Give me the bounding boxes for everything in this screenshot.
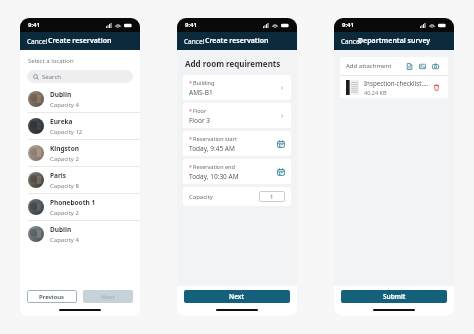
staticText: * — [189, 135, 193, 142]
button[interactable]: Inspection-checklist.pdf — [340, 76, 448, 98]
staticText: Capacity 12 — [50, 128, 83, 136]
staticText: Inspection-checklist.pdf — [364, 79, 431, 87]
staticText: Building — [193, 79, 215, 86]
button[interactable]: Eureka — [20, 113, 140, 139]
button[interactable]: Next — [184, 290, 290, 303]
other: Pick date — [277, 140, 285, 148]
staticText: Search — [42, 73, 61, 81]
button[interactable]: Cancel — [177, 34, 212, 49]
staticText: AMS-B1 — [189, 88, 213, 97]
staticText: Capacity 8 — [50, 182, 79, 190]
staticText: Today, 10:30 AM — [189, 172, 239, 181]
staticText: Eureka — [50, 117, 73, 126]
staticText: Capacity 4 — [50, 236, 79, 244]
staticText: Reservation start — [193, 135, 237, 142]
button[interactable]: Capacity — [183, 187, 291, 206]
staticText: Reservation end — [193, 163, 235, 170]
button[interactable]: Kingston — [20, 140, 140, 166]
staticText: Add attachment — [346, 62, 403, 70]
staticText: Cancel — [341, 37, 362, 46]
staticText: Create reservation — [205, 36, 269, 46]
staticText: Capacity 2 — [50, 209, 79, 217]
button[interactable]: * — [183, 75, 291, 100]
button[interactable]: Take photo — [429, 60, 442, 73]
button[interactable]: Attach image — [416, 60, 429, 73]
staticText: Next — [101, 293, 115, 301]
staticText: Create reservation — [48, 36, 112, 46]
staticText: Select a location — [28, 57, 74, 65]
staticText: * — [189, 163, 193, 170]
button[interactable]: Dublin — [20, 221, 140, 247]
button[interactable]: Submit — [341, 290, 447, 303]
staticText: Capacity — [189, 193, 259, 201]
staticText: Kingston — [50, 144, 79, 153]
staticText: Cancel — [27, 37, 48, 46]
button[interactable]: Previous — [27, 290, 77, 303]
staticText: Capacity 4 — [50, 101, 79, 109]
button[interactable]: * — [183, 103, 291, 128]
button[interactable]: Cancel — [20, 34, 55, 49]
button[interactable]: * — [183, 159, 291, 184]
staticText: Floor — [193, 107, 207, 114]
staticText: Today, 9:45 AM — [189, 144, 235, 153]
button[interactable]: Paris — [20, 167, 140, 193]
button[interactable]: Phonebooth 1 — [20, 194, 140, 220]
staticText: 40.24 KB — [364, 89, 387, 96]
staticText: 9:41 — [185, 21, 197, 29]
staticText: Phonebooth 1 — [50, 198, 96, 207]
staticText: Departmental survey — [358, 36, 431, 46]
button[interactable]: Dublin — [20, 86, 140, 112]
button[interactable]: Attach file — [403, 60, 416, 73]
staticText: Dublin — [50, 90, 72, 99]
staticText: Floor 3 — [189, 116, 211, 125]
staticText: Previous — [39, 293, 65, 301]
other: Pick date — [277, 168, 285, 176]
staticText: Add room requirements — [185, 58, 281, 69]
staticText: Cancel — [184, 37, 205, 46]
button[interactable]: * — [183, 131, 291, 156]
button[interactable]: Search — [27, 70, 133, 83]
button[interactable]: Next — [83, 290, 133, 303]
staticText: Paris — [50, 171, 67, 180]
staticText: Submit — [383, 292, 406, 301]
button[interactable]: Cancel — [334, 34, 369, 49]
button[interactable]: Delete attachment — [431, 82, 442, 93]
staticText: 9:41 — [342, 21, 354, 29]
staticText: * — [189, 107, 193, 114]
staticText: Dublin — [50, 225, 72, 234]
staticText: Next — [229, 292, 245, 301]
staticText: 9:41 — [28, 21, 40, 29]
staticText: Capacity 2 — [50, 155, 79, 163]
staticText: 1 — [270, 193, 274, 201]
staticText: * — [189, 79, 193, 86]
